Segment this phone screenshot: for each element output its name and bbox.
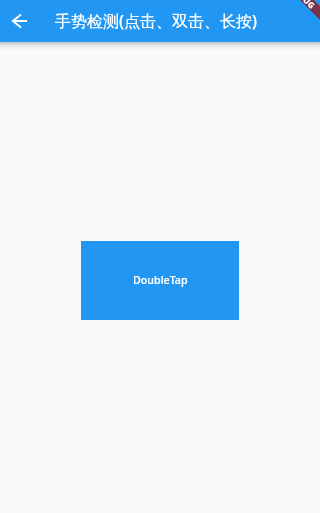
staticText: DoubleTap	[133, 273, 188, 288]
button[interactable]: DoubleTap	[81, 241, 239, 320]
button[interactable]: Back	[0, 1, 40, 41]
staticText: 手势检测(点击、双击、长按)	[55, 10, 257, 32]
